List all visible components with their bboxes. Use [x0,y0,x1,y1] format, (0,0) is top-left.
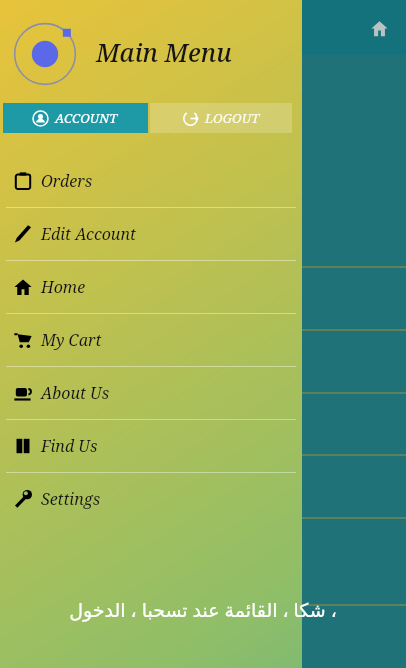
staticText: Settings [41,488,101,510]
button[interactable]: About Us [0,367,302,419]
staticText: ACCOUNT [55,109,118,127]
button[interactable]: Home [0,261,302,313]
staticText: Find Us [41,435,98,457]
button[interactable]: LOGOUT [150,103,292,133]
staticText: Orders [41,170,93,192]
staticText: Edit Account [41,223,136,245]
button[interactable]: Orders [0,155,302,207]
staticText: شكا ، القائمة عند تسحبا ، الدخول ، [69,597,337,623]
button[interactable]: Home [362,11,396,45]
button[interactable]: Find Us [0,420,302,472]
button[interactable]: Edit Account [0,208,302,260]
staticText: Main Menu [96,35,232,69]
staticText: About Us [41,382,110,404]
staticText: LOGOUT [205,109,260,127]
button[interactable]: Settings [0,473,302,525]
staticText: My Cart [41,329,102,351]
button[interactable]: My Cart [0,314,302,366]
button[interactable]: ACCOUNT [3,103,148,133]
staticText: Home [41,276,86,298]
